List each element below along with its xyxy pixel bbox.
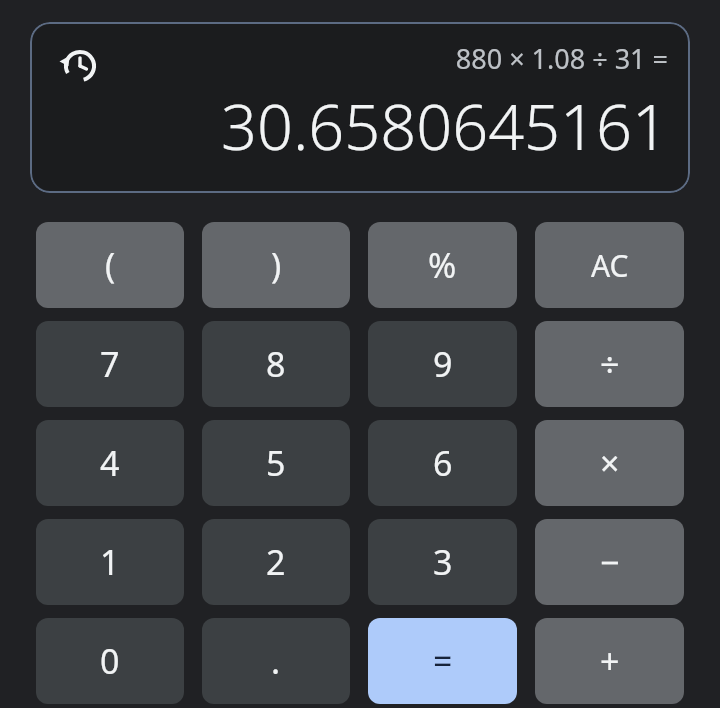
button[interactable]: . <box>202 618 350 704</box>
button[interactable]: + <box>535 618 684 704</box>
button[interactable]: − <box>535 519 684 605</box>
button[interactable]: 7 <box>36 321 184 407</box>
button[interactable]: ÷ <box>535 321 684 407</box>
button[interactable]: 4 <box>36 420 184 506</box>
staticText: 7 <box>100 341 120 387</box>
staticText: 2 <box>266 539 286 585</box>
staticText: 9 <box>433 341 453 387</box>
button[interactable]: 1 <box>36 519 184 605</box>
staticText: 6 <box>433 440 453 486</box>
staticText: 30.6580645161 <box>220 83 668 169</box>
button[interactable]: % <box>368 222 517 308</box>
button[interactable]: = <box>368 618 517 704</box>
staticText: 0 <box>100 638 120 684</box>
staticText: + <box>600 638 620 684</box>
staticText: 8 <box>266 341 286 387</box>
staticText: 880 × 1.08 ÷ 31 = <box>455 40 668 77</box>
button[interactable]: ( <box>36 222 184 308</box>
staticText: ( <box>105 242 116 288</box>
button[interactable]: 6 <box>368 420 517 506</box>
staticText: 3 <box>433 539 453 585</box>
button[interactable]: History <box>56 42 104 90</box>
staticText: ) <box>271 242 282 288</box>
button[interactable]: 3 <box>368 519 517 605</box>
button[interactable]: × <box>535 420 684 506</box>
button[interactable]: 8 <box>202 321 350 407</box>
staticText: = <box>433 638 453 684</box>
staticText: 5 <box>266 440 286 486</box>
button[interactable]: AC <box>535 222 684 308</box>
staticText: AC <box>591 245 629 286</box>
staticText: 1 <box>100 539 120 585</box>
button[interactable]: 2 <box>202 519 350 605</box>
staticText: ÷ <box>600 341 620 387</box>
button[interactable]: ) <box>202 222 350 308</box>
button[interactable]: 9 <box>368 321 517 407</box>
staticText: × <box>600 440 620 486</box>
staticText: . <box>271 638 281 684</box>
button[interactable]: 5 <box>202 420 350 506</box>
staticText: − <box>600 539 620 585</box>
staticText: 4 <box>100 440 120 486</box>
staticText: % <box>428 242 457 288</box>
button[interactable]: 0 <box>36 618 184 704</box>
